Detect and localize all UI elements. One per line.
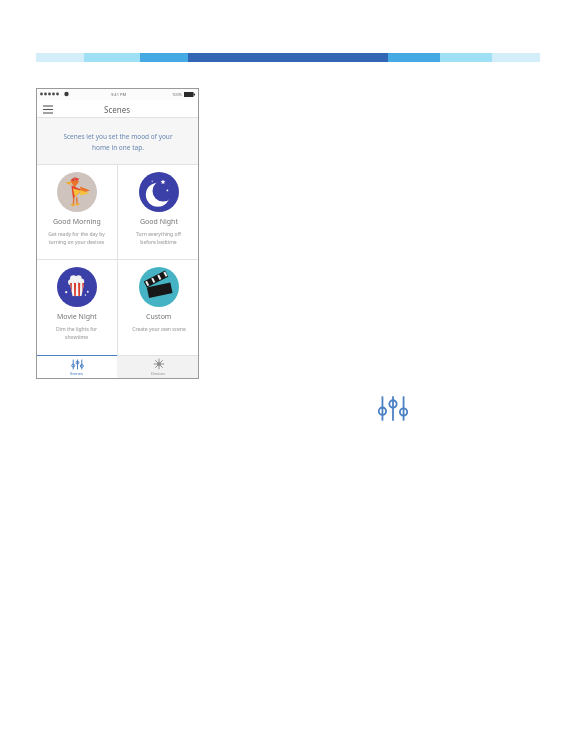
staticText: Scenes xyxy=(104,104,131,115)
staticText: Get ready for the day by turning on your… xyxy=(48,231,105,246)
staticText: Custom xyxy=(146,312,172,322)
button[interactable]: Good Morning xyxy=(36,165,117,259)
button[interactable]: Scenes xyxy=(377,395,409,422)
button[interactable]: Custom xyxy=(118,260,199,355)
staticText: Create your own scene xyxy=(132,326,186,333)
staticText: 9:41 PM xyxy=(111,92,127,97)
staticText: Good Morning xyxy=(53,217,101,227)
staticText: Movie Night xyxy=(57,312,97,322)
staticText: Scenes xyxy=(70,371,84,376)
staticText: Good Night xyxy=(140,217,178,227)
button[interactable]: Scenes xyxy=(36,355,117,379)
staticText: Dim the lights for showtime xyxy=(56,326,97,341)
staticText: 100% xyxy=(172,92,183,97)
button[interactable]: Movie Night xyxy=(36,260,117,355)
staticText: Turn everything off before bedtime xyxy=(136,231,181,246)
button[interactable]: Devices xyxy=(117,355,199,379)
button[interactable]: Menu xyxy=(41,102,55,116)
staticText: Scenes let you set the mood of your home… xyxy=(63,132,173,152)
button[interactable]: Good Night xyxy=(118,165,199,259)
staticText: Devices xyxy=(151,371,166,376)
